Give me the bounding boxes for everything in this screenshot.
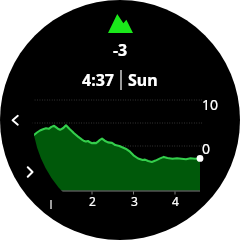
staticText: 2 <box>87 193 98 240</box>
button[interactable]: Previous <box>9 113 23 127</box>
staticText: 4:37 <box>82 69 114 91</box>
staticText: 4 <box>170 193 181 240</box>
staticText: 10 <box>202 95 219 114</box>
staticText: 3 <box>129 193 140 240</box>
staticText: 0 <box>202 139 211 158</box>
button[interactable]: Next <box>23 165 37 179</box>
staticText: -3 <box>113 39 128 61</box>
staticText: Sun <box>128 69 158 91</box>
